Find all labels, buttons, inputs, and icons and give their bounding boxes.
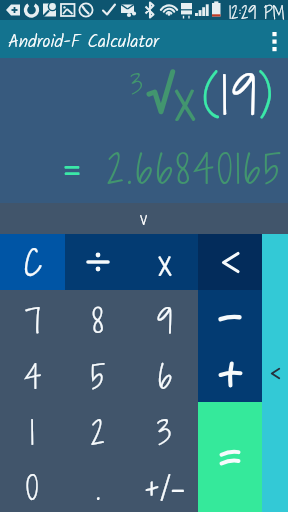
button[interactable]: . bbox=[65, 458, 131, 512]
staticText: 7 bbox=[25, 298, 41, 343]
staticText: 2 bbox=[91, 410, 105, 455]
staticText: v bbox=[140, 206, 148, 231]
staticText: 6 bbox=[158, 354, 172, 399]
button[interactable]: Divide bbox=[65, 234, 131, 290]
button[interactable]: 7 bbox=[0, 290, 65, 346]
button[interactable]: +/- bbox=[131, 458, 198, 512]
button[interactable]: 4 bbox=[0, 346, 65, 402]
button[interactable]: 3 bbox=[131, 402, 198, 458]
button[interactable]: 0 bbox=[0, 458, 65, 512]
staticText: ³ bbox=[130, 59, 145, 126]
button[interactable]: Backspace bbox=[198, 234, 262, 290]
button[interactable]: Equals bbox=[198, 402, 262, 512]
button[interactable]: More options bbox=[260, 20, 288, 58]
staticText: x bbox=[158, 238, 172, 287]
button[interactable]: Show history bbox=[0, 203, 288, 234]
staticText: . bbox=[96, 465, 101, 510]
button[interactable]: Minus bbox=[198, 290, 262, 346]
staticText: +/- bbox=[144, 465, 185, 510]
staticText: 0 bbox=[26, 465, 39, 510]
button[interactable]: Open side panel bbox=[262, 234, 288, 512]
staticText: ) bbox=[259, 59, 273, 132]
staticText: 4 bbox=[24, 354, 42, 399]
staticText: 9 bbox=[157, 298, 173, 343]
button[interactable]: x bbox=[131, 234, 198, 290]
button[interactable]: 2 bbox=[65, 402, 131, 458]
staticText: 5 bbox=[91, 354, 106, 399]
button[interactable]: 9 bbox=[131, 290, 198, 346]
staticText: Android-F Calculator bbox=[8, 28, 159, 57]
button[interactable]: 5 bbox=[65, 346, 131, 402]
staticText: 1 bbox=[30, 410, 35, 455]
button[interactable]: C bbox=[0, 234, 65, 290]
staticText: 19 bbox=[221, 59, 261, 132]
button[interactable]: Plus bbox=[198, 346, 262, 402]
button[interactable]: 8 bbox=[65, 290, 131, 346]
staticText: 12:29 PM bbox=[229, 1, 285, 21]
staticText: = 2.66840165 bbox=[60, 142, 285, 197]
button[interactable]: 6 bbox=[131, 346, 198, 402]
staticText: C bbox=[24, 238, 42, 287]
staticText: 8 bbox=[92, 298, 104, 343]
staticText: ( bbox=[203, 59, 220, 132]
button[interactable]: 1 bbox=[0, 402, 65, 458]
staticText: x bbox=[174, 61, 196, 139]
staticText: 3 bbox=[157, 410, 172, 455]
